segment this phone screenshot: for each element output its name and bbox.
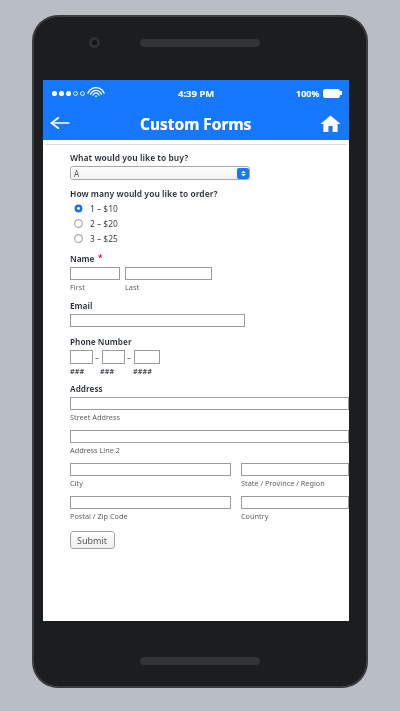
staticText: #### xyxy=(133,366,152,376)
staticText: ### xyxy=(100,366,115,376)
button[interactable] xyxy=(70,463,231,476)
button[interactable] xyxy=(70,430,349,443)
staticText: Postal / Zip Code xyxy=(70,511,128,521)
staticText: – xyxy=(125,352,134,363)
button[interactable] xyxy=(125,267,212,280)
staticText: 100% xyxy=(296,87,320,99)
staticText: Address Line 2 xyxy=(70,445,120,455)
button[interactable] xyxy=(134,350,160,364)
button[interactable]: 3 – $25 xyxy=(70,231,118,246)
button[interactable]: 1 – $10 xyxy=(70,201,118,216)
staticText: Email xyxy=(70,300,93,311)
staticText: First xyxy=(70,282,85,292)
button[interactable] xyxy=(70,496,231,509)
button[interactable] xyxy=(241,496,349,509)
staticText: 3 – $25 xyxy=(90,233,118,244)
button[interactable] xyxy=(70,350,93,364)
button[interactable]: Home xyxy=(315,108,345,138)
staticText: Name xyxy=(70,253,95,264)
staticText: 4:39 PM xyxy=(178,87,215,100)
button[interactable] xyxy=(70,397,349,410)
staticText: How many would you like to order? xyxy=(70,188,218,199)
button[interactable]: 2 – $20 xyxy=(70,216,118,231)
staticText: Last xyxy=(125,282,140,292)
button[interactable] xyxy=(102,350,125,364)
button[interactable] xyxy=(70,314,245,327)
staticText: City xyxy=(70,478,83,488)
button[interactable] xyxy=(70,267,120,280)
staticText: State / Province / Region xyxy=(241,478,325,488)
staticText: A xyxy=(74,168,80,179)
staticText: Street Address xyxy=(70,412,120,422)
button[interactable]: Back xyxy=(43,106,77,140)
staticText: Submit xyxy=(77,534,108,546)
staticText: Phone Number xyxy=(70,336,132,347)
staticText: 1 – $10 xyxy=(90,203,118,214)
staticText: ### xyxy=(70,366,85,376)
button[interactable]: Submit xyxy=(70,531,115,549)
staticText: * xyxy=(98,252,103,264)
staticText: Address xyxy=(70,383,103,394)
button[interactable] xyxy=(241,463,349,476)
staticText: Country xyxy=(241,511,269,521)
staticText: – xyxy=(93,352,102,363)
staticText: 2 – $20 xyxy=(90,218,118,229)
button[interactable]: A xyxy=(70,166,250,180)
staticText: What would you like to buy? xyxy=(70,152,189,163)
staticText: Custom Forms xyxy=(140,113,252,134)
